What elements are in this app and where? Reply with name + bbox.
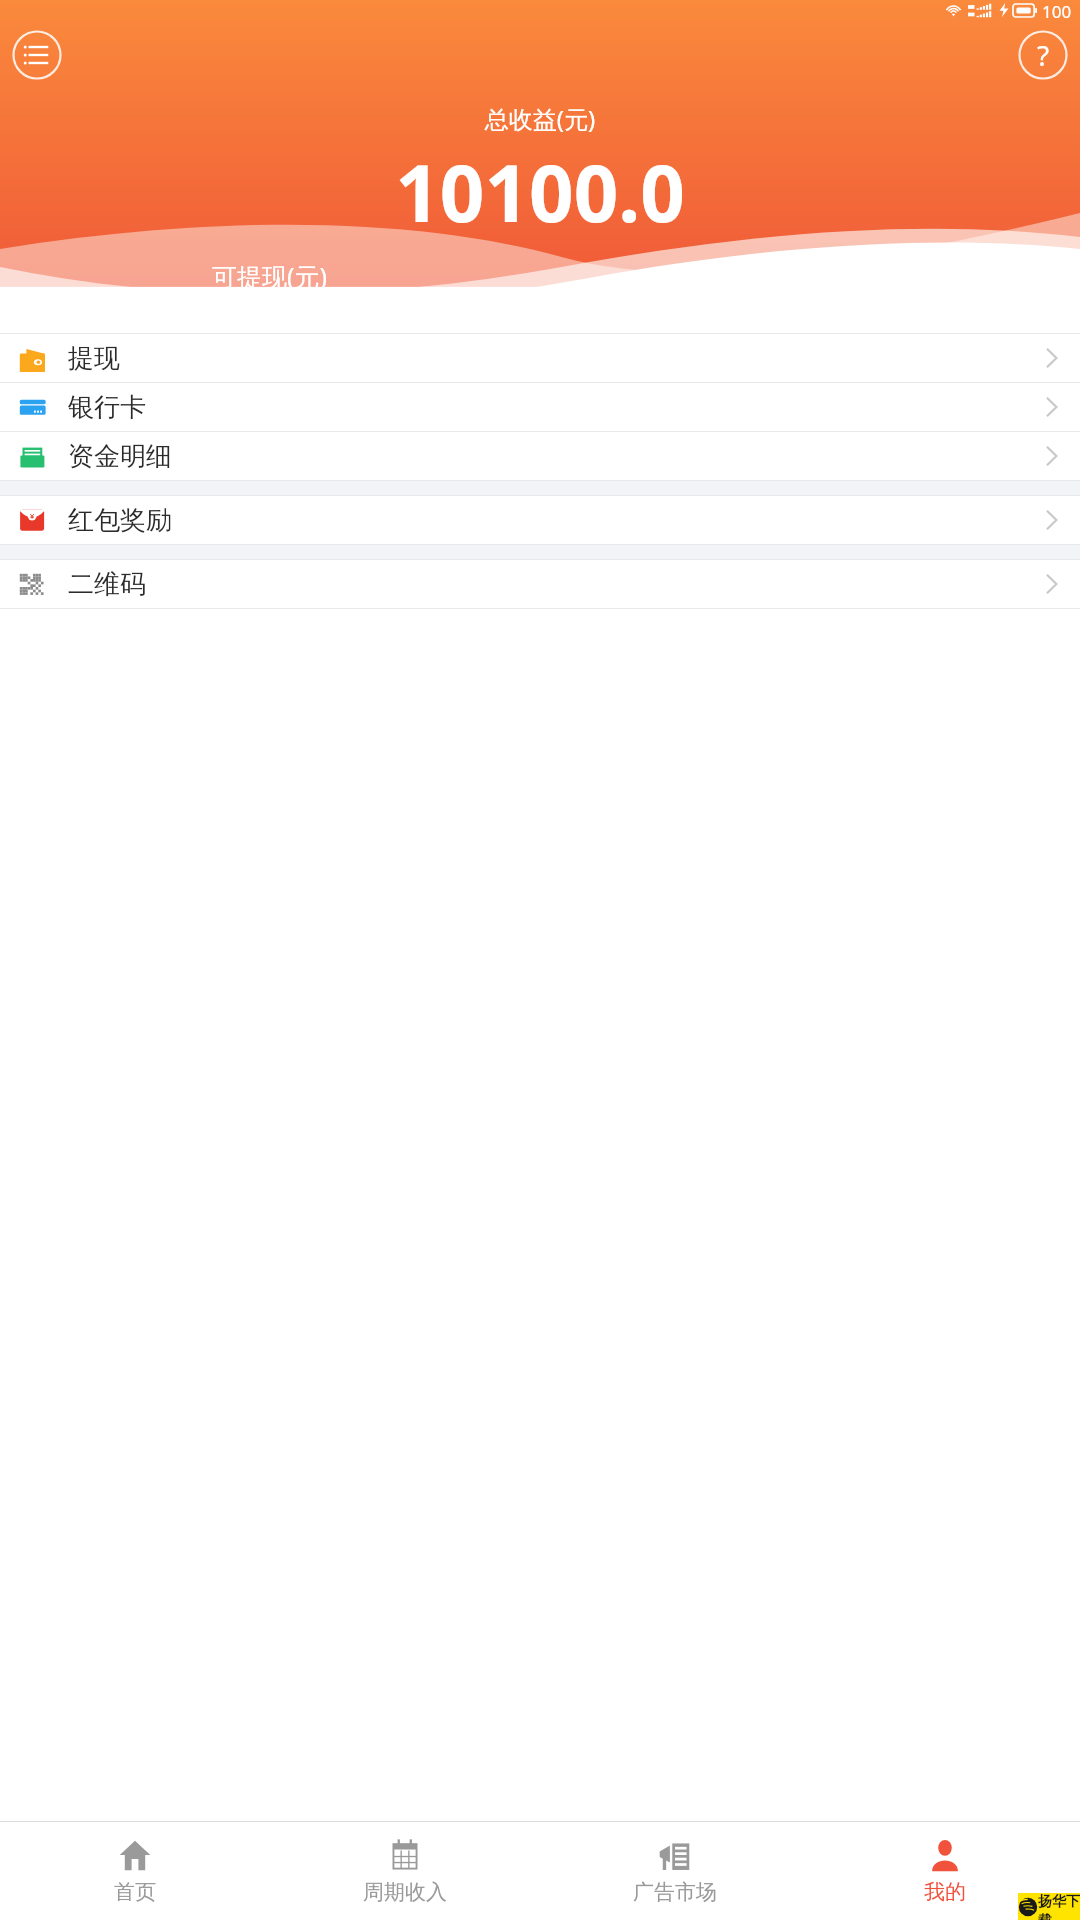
staticText: 扬华下载 <box>1038 1893 1080 1920</box>
button[interactable]: 周期收入 <box>270 1822 540 1920</box>
button[interactable]: 红包奖励 <box>0 496 1080 544</box>
staticText: 100 <box>1042 0 1072 20</box>
button[interactable]: 广告市场 <box>540 1822 810 1920</box>
staticText: 周期收入 <box>363 1879 447 1905</box>
button[interactable]: Help <box>1018 30 1068 80</box>
button[interactable]: 二维码 <box>0 560 1080 608</box>
staticText: 可提现(元) <box>212 259 328 293</box>
button[interactable]: 我的 <box>810 1822 1080 1920</box>
staticText: 二维码 <box>68 568 146 601</box>
staticText: 银行卡 <box>68 391 146 424</box>
button[interactable]: Menu <box>12 30 62 80</box>
staticText: 10100.0 <box>0 139 1080 245</box>
staticText: 我的 <box>924 1879 966 1905</box>
button[interactable]: 银行卡 <box>0 383 1080 431</box>
button[interactable]: 首页 <box>0 1822 270 1920</box>
staticText: ? <box>1037 36 1050 74</box>
button[interactable]: 提现 <box>0 334 1080 382</box>
staticText: 首页 <box>114 1879 156 1905</box>
button[interactable]: 资金明细 <box>0 432 1080 480</box>
staticText: 广告市场 <box>633 1879 717 1905</box>
staticText: 资金明细 <box>68 440 172 473</box>
staticText: 总收益(元) <box>0 102 1080 135</box>
staticText: 红包奖励 <box>68 504 172 537</box>
staticText: 提现 <box>68 342 120 375</box>
